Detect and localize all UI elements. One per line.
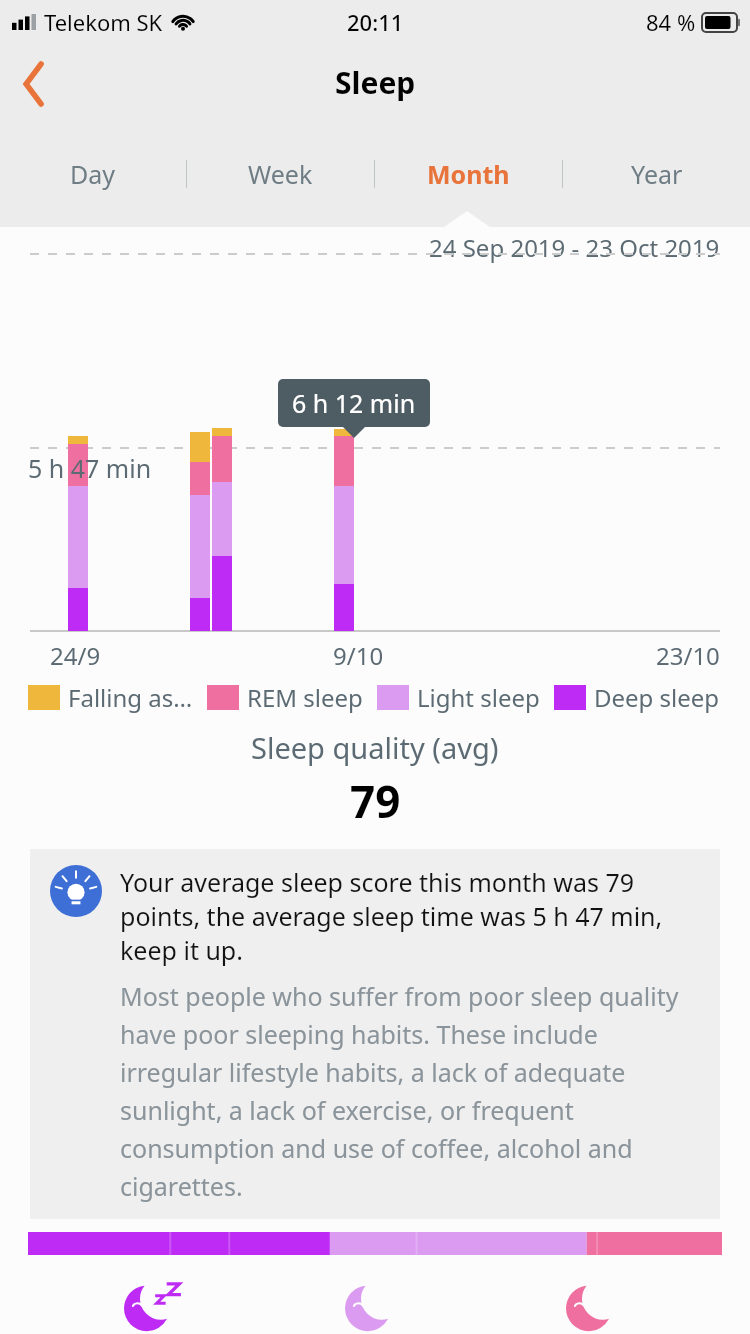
staticText: Deep sleep: [594, 681, 720, 714]
button[interactable]: Back: [8, 52, 72, 116]
button[interactable]: Your average sleep score this month was …: [30, 849, 720, 1219]
staticText: Week: [248, 157, 313, 191]
staticText: Light sleep: [417, 681, 540, 714]
staticText: 6 h 12 min: [292, 386, 416, 420]
staticText: 20:11: [347, 7, 404, 37]
staticText: 9/10: [333, 639, 384, 672]
button[interactable]: Week: [187, 144, 374, 204]
staticText: Most people who suffer from poor sleep q…: [120, 979, 702, 1203]
staticText: 84 %: [646, 7, 696, 37]
button[interactable]: Year: [563, 144, 750, 204]
staticText: 23/10: [656, 639, 720, 672]
staticText: 24 Sep 2019 - 23 Oct 2019: [429, 231, 720, 264]
staticText: Day: [70, 157, 116, 191]
staticText: Sleep quality (avg): [251, 728, 499, 767]
staticText: Telekom SK: [44, 7, 163, 37]
staticText: Month: [427, 157, 510, 191]
button[interactable]: Day: [0, 144, 186, 204]
staticText: Falling as…: [68, 681, 193, 714]
button[interactable]: Month: [375, 144, 562, 204]
staticText: REM sleep: [247, 681, 363, 714]
staticText: 79: [350, 771, 401, 831]
staticText: Sleep: [335, 62, 416, 103]
staticText: 24/9: [50, 639, 101, 672]
staticText: Your average sleep score this month was …: [120, 865, 702, 967]
staticText: Year: [631, 157, 683, 191]
staticText: 5 h 47 min: [28, 451, 152, 485]
